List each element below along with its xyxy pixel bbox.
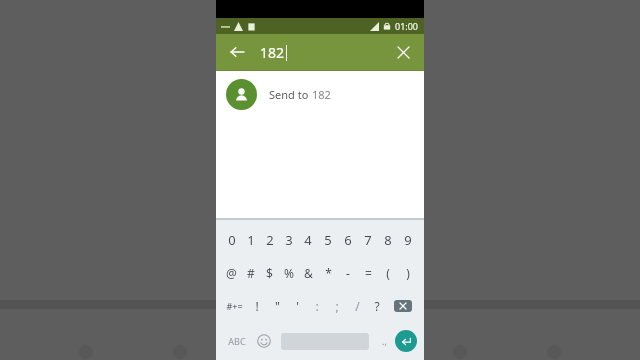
button[interactable]: ; — [327, 289, 347, 322]
button[interactable]: 6 — [338, 223, 358, 256]
button[interactable]: 9 — [398, 223, 418, 256]
staticText: 2 — [266, 231, 274, 249]
staticText: ABC — [228, 335, 246, 347]
staticText: @ — [226, 265, 237, 281]
button[interactable]: Back — [226, 41, 248, 63]
staticText: # — [247, 265, 255, 281]
staticText: #+= — [226, 300, 243, 312]
button[interactable]: 5 — [318, 223, 338, 256]
button[interactable]: Send to — [216, 71, 424, 117]
staticText: * — [325, 265, 332, 281]
button[interactable]: 2 — [260, 223, 279, 256]
staticText: % — [284, 265, 294, 281]
button[interactable]: Emoji — [251, 322, 277, 360]
button[interactable]: ? — [367, 289, 387, 322]
staticText: / — [355, 298, 360, 314]
button[interactable]: ., — [373, 322, 395, 360]
staticText: 5 — [324, 231, 332, 249]
staticText: 182 — [260, 43, 285, 62]
staticText: 182 — [312, 87, 331, 102]
button[interactable]: = — [358, 256, 378, 289]
staticText: = — [365, 265, 372, 281]
staticText: Send to — [269, 87, 312, 102]
button[interactable]: ABC — [223, 322, 251, 360]
staticText: 8 — [384, 231, 392, 249]
button[interactable]: Backspace — [387, 289, 419, 322]
staticText: ., — [382, 335, 387, 347]
staticText: 3 — [285, 231, 293, 249]
button[interactable]: 8 — [378, 223, 398, 256]
button[interactable]: 0 — [222, 223, 241, 256]
staticText: 7 — [364, 231, 372, 249]
button[interactable]: 1 — [241, 223, 260, 256]
button[interactable]: Clear — [392, 41, 414, 63]
button[interactable]: " — [267, 289, 287, 322]
button[interactable]: ' — [287, 289, 307, 322]
staticText: ; — [335, 298, 339, 314]
button[interactable]: @ — [222, 256, 241, 289]
staticText: 6 — [344, 231, 352, 249]
button[interactable]: Enter — [395, 330, 417, 352]
button[interactable]: $ — [260, 256, 279, 289]
staticText: 0 — [228, 231, 236, 249]
staticText: ? — [374, 298, 380, 314]
staticText: - — [346, 265, 350, 281]
button[interactable]: #+= — [221, 289, 247, 322]
staticText: $ — [266, 265, 273, 281]
staticText: 9 — [404, 231, 412, 249]
button[interactable]: & — [298, 256, 318, 289]
staticText: 4 — [304, 231, 312, 249]
staticText: 1 — [247, 231, 255, 249]
staticText: " — [275, 298, 280, 314]
staticText: ) — [406, 265, 410, 281]
button[interactable]: / — [347, 289, 367, 322]
button[interactable]: 3 — [279, 223, 298, 256]
button[interactable]: : — [307, 289, 327, 322]
button[interactable]: * — [318, 256, 338, 289]
button[interactable]: ( — [378, 256, 398, 289]
staticText: ( — [386, 265, 390, 281]
button[interactable]: ) — [398, 256, 418, 289]
staticText: : — [315, 298, 319, 314]
button[interactable]: - — [338, 256, 358, 289]
staticText: 01:00 — [395, 20, 419, 32]
button[interactable]: % — [279, 256, 298, 289]
staticText: ! — [255, 298, 259, 314]
button[interactable]: # — [241, 256, 260, 289]
staticText: ' — [296, 298, 299, 314]
button[interactable]: 7 — [358, 223, 378, 256]
staticText: & — [304, 265, 313, 281]
button[interactable]: ! — [247, 289, 267, 322]
button[interactable]: 4 — [298, 223, 318, 256]
